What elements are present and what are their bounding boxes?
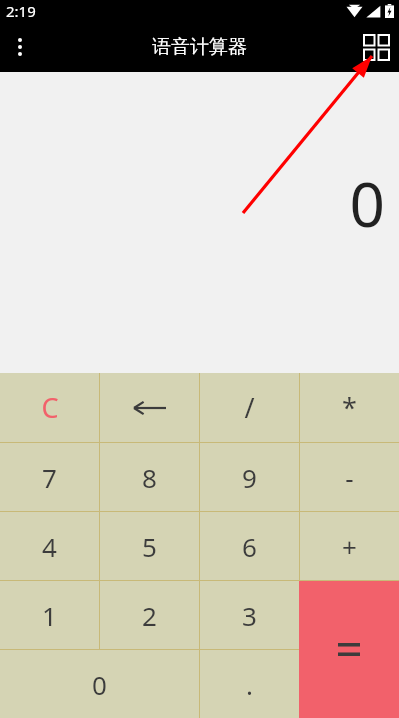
button[interactable]: 6	[200, 512, 299, 580]
button[interactable]: Equals	[299, 581, 399, 718]
staticText: 6	[242, 529, 257, 564]
staticText: 8	[142, 460, 157, 495]
staticText: 语音计算器	[152, 35, 247, 59]
button[interactable]: Backspace	[100, 373, 199, 442]
staticText: 1	[42, 598, 57, 633]
button[interactable]: 8	[100, 443, 199, 511]
staticText: 0	[92, 667, 107, 702]
button[interactable]: More options	[0, 22, 40, 72]
button[interactable]: 2	[100, 581, 199, 649]
staticText: 0	[349, 161, 385, 245]
button[interactable]: 4	[0, 512, 99, 580]
staticText: 9	[242, 460, 257, 495]
button[interactable]: /	[200, 373, 299, 442]
button[interactable]: 9	[200, 443, 299, 511]
staticText: 5	[142, 529, 157, 564]
button[interactable]: 7	[0, 443, 99, 511]
staticText: 4	[42, 529, 57, 564]
button[interactable]: *	[300, 373, 399, 442]
staticText: /	[244, 389, 255, 426]
staticText: +	[342, 529, 357, 564]
button[interactable]: .	[200, 650, 299, 718]
button[interactable]: -	[300, 443, 399, 511]
button[interactable]: Grid view	[353, 22, 399, 72]
staticText: *	[342, 389, 357, 426]
button[interactable]: 1	[0, 581, 99, 649]
button[interactable]: 5	[100, 512, 199, 580]
staticText: C	[41, 389, 59, 426]
staticText: 7	[42, 460, 57, 495]
button[interactable]: +	[300, 512, 399, 580]
button[interactable]: 0	[0, 650, 199, 718]
button[interactable]: C	[0, 373, 99, 442]
staticText: 3	[242, 598, 257, 633]
staticText: 2:19	[6, 1, 36, 21]
staticText: 2	[142, 598, 157, 633]
staticText: .	[246, 667, 253, 702]
button[interactable]: 3	[200, 581, 299, 649]
staticText: -	[345, 460, 354, 495]
